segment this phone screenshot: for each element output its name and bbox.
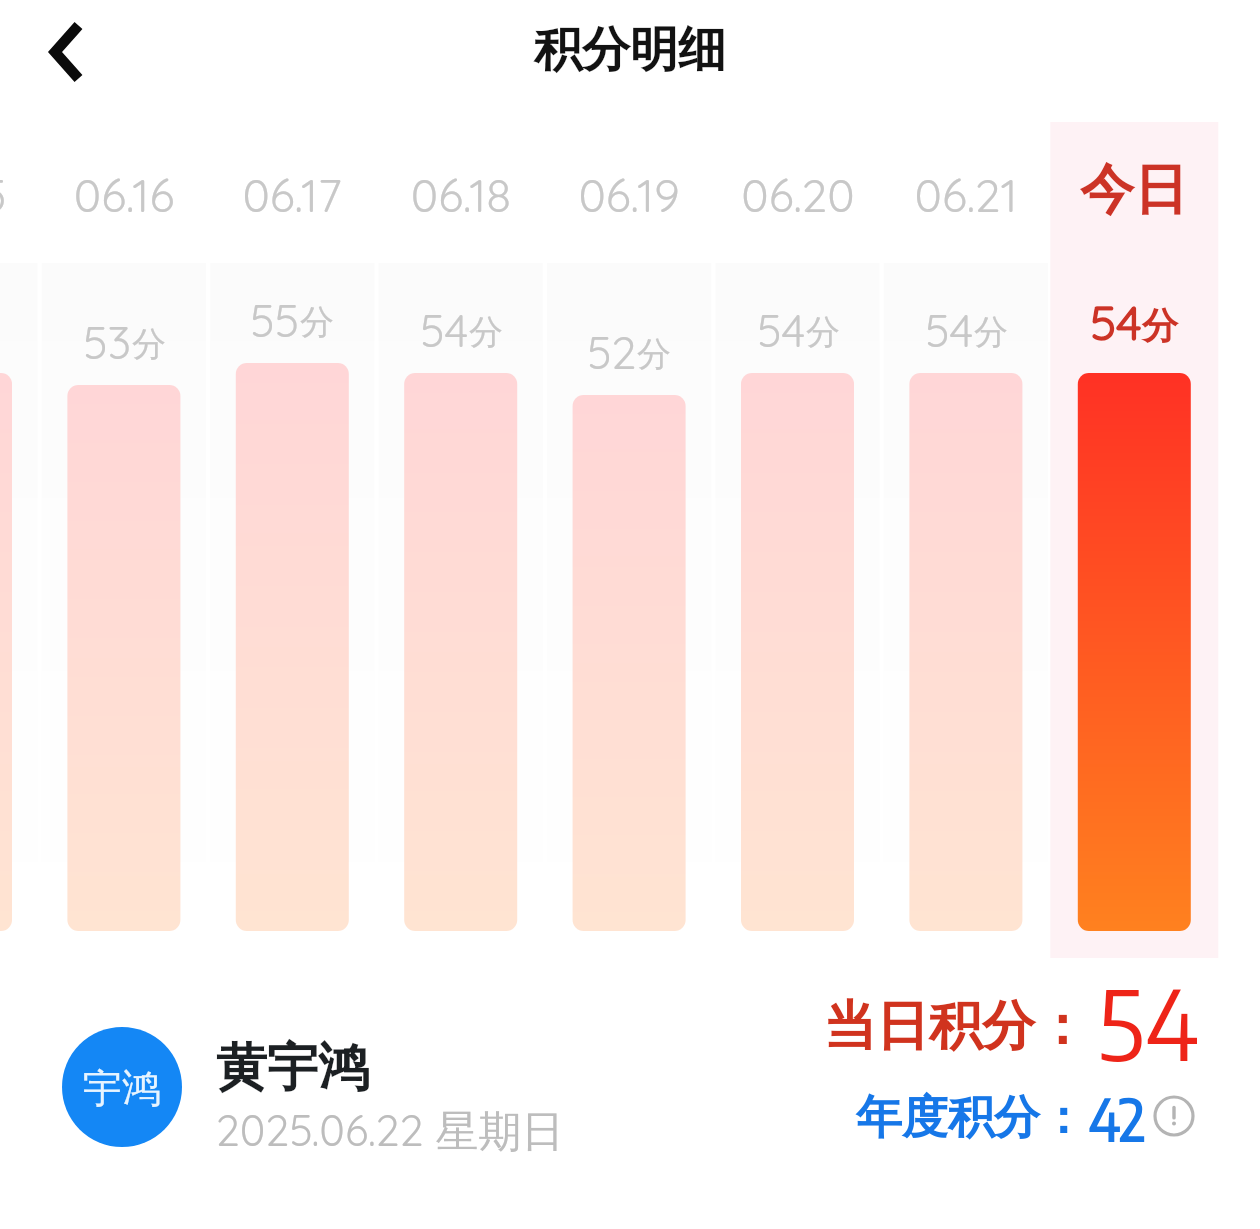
staticText: 54 <box>925 302 974 358</box>
button[interactable]: 返回 <box>20 8 108 96</box>
staticText: 06.15 <box>0 166 76 224</box>
staticText: 06.19 <box>509 166 749 224</box>
staticText: 宇鸿 <box>83 1064 161 1113</box>
staticText: 当日积分： <box>823 993 1088 1060</box>
staticText: 2025.06.22 星期日 <box>216 1103 565 1159</box>
button[interactable]: 积分说明 <box>1152 1094 1196 1138</box>
staticText: 06.18 <box>341 166 581 224</box>
staticText: 54 <box>420 302 469 358</box>
staticText: 今日 <box>1014 156 1254 224</box>
staticText: 年度积分： <box>856 1089 1086 1147</box>
staticText: 54 <box>1090 292 1142 352</box>
staticText: 积分明细 <box>534 20 726 80</box>
staticText: 55 <box>250 292 300 348</box>
button[interactable]: 06.20 54分 <box>714 122 882 958</box>
button[interactable]: 06.17 55分 <box>208 122 376 958</box>
staticText: 54 <box>757 302 806 358</box>
staticText: 分 <box>637 333 671 376</box>
button[interactable]: 06.19 52分 <box>545 122 713 958</box>
staticText: 分 <box>806 311 840 354</box>
staticText: 06.20 <box>678 166 918 224</box>
staticText: 分 <box>469 311 503 354</box>
staticText: 黄宇鸿 <box>216 1036 369 1100</box>
button[interactable]: 今日 54分 <box>1050 122 1218 958</box>
staticText: 分 <box>132 323 166 366</box>
staticText: 06.17 <box>172 166 412 224</box>
staticText: 06.21 <box>846 166 1086 224</box>
staticText: 06.16 <box>4 166 244 224</box>
staticText: 53 <box>83 314 132 370</box>
staticText: 分 <box>1142 303 1178 348</box>
staticText: 52 <box>587 324 637 380</box>
button[interactable]: 06.21 54分 <box>882 122 1050 958</box>
staticText: 分 <box>974 311 1008 354</box>
button[interactable]: 06.18 54分 <box>377 122 545 958</box>
staticText: 54 <box>1098 962 1199 1082</box>
button[interactable]: 06.16 53分 <box>40 122 208 958</box>
button[interactable]: 用户头像 <box>62 1027 182 1147</box>
staticText: 分 <box>300 301 334 344</box>
button[interactable]: 06.15 54分 <box>0 122 40 958</box>
staticText: 42 <box>1089 1083 1146 1153</box>
